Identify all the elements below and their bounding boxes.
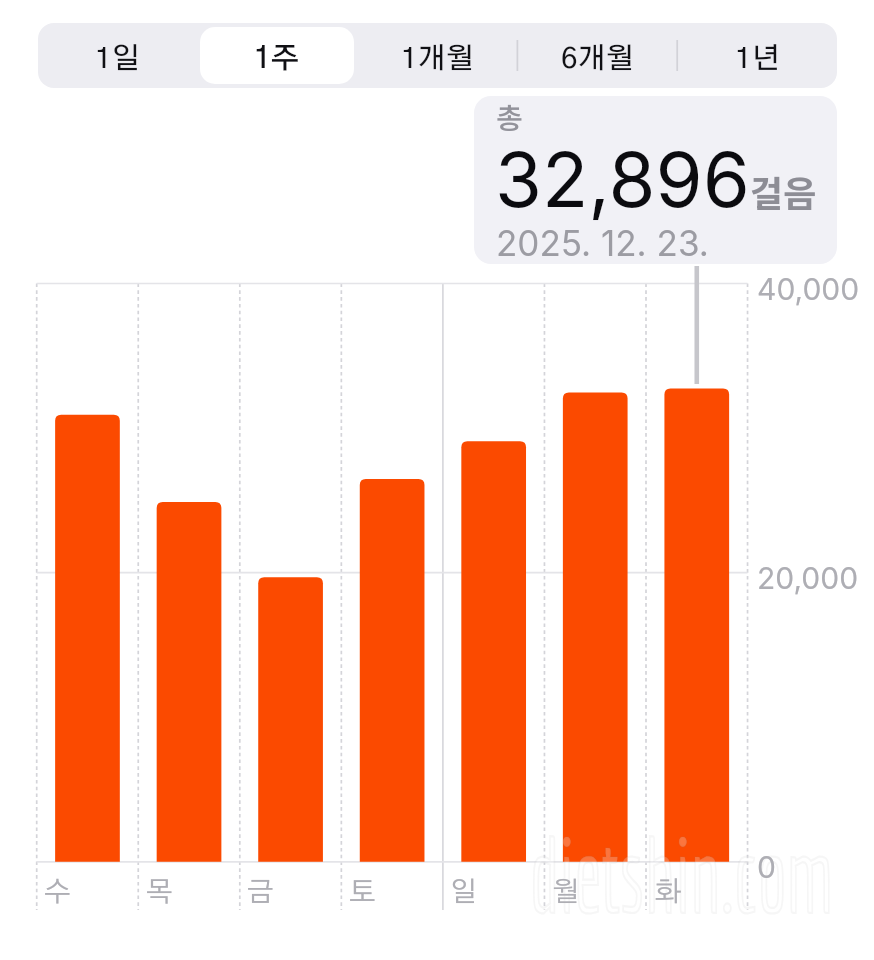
staticText: dietshin.com	[530, 813, 833, 934]
staticText: 1일	[95, 45, 140, 74]
staticText: 1주	[254, 45, 300, 74]
staticText: 20,000	[757, 560, 859, 596]
staticText: 1개월	[401, 45, 474, 74]
staticText: 목	[146, 879, 173, 907]
staticText: 일	[450, 879, 477, 907]
button[interactable]: 1년	[677, 23, 837, 88]
staticText: 걸음	[750, 165, 817, 217]
staticText: 6개월	[561, 45, 634, 74]
staticText: 2025. 12. 23.	[496, 222, 709, 264]
staticText: dietshin.com	[530, 813, 833, 934]
button[interactable]: 1일	[38, 23, 197, 88]
staticText: 총	[496, 96, 523, 137]
staticText: 1년	[735, 45, 780, 74]
staticText: 금	[247, 879, 274, 907]
staticText: 토	[349, 879, 376, 907]
button[interactable]: 6개월	[517, 23, 677, 88]
button[interactable]: 1주	[197, 23, 357, 88]
staticText: 32,896	[495, 133, 750, 225]
button[interactable]: 1개월	[357, 23, 517, 88]
staticText: 월	[552, 879, 579, 907]
staticText: 0	[757, 849, 776, 885]
button[interactable]: 총	[474, 96, 837, 264]
staticText: 40,000	[757, 271, 860, 307]
staticText: 화	[654, 879, 681, 907]
staticText: 수	[44, 879, 71, 907]
